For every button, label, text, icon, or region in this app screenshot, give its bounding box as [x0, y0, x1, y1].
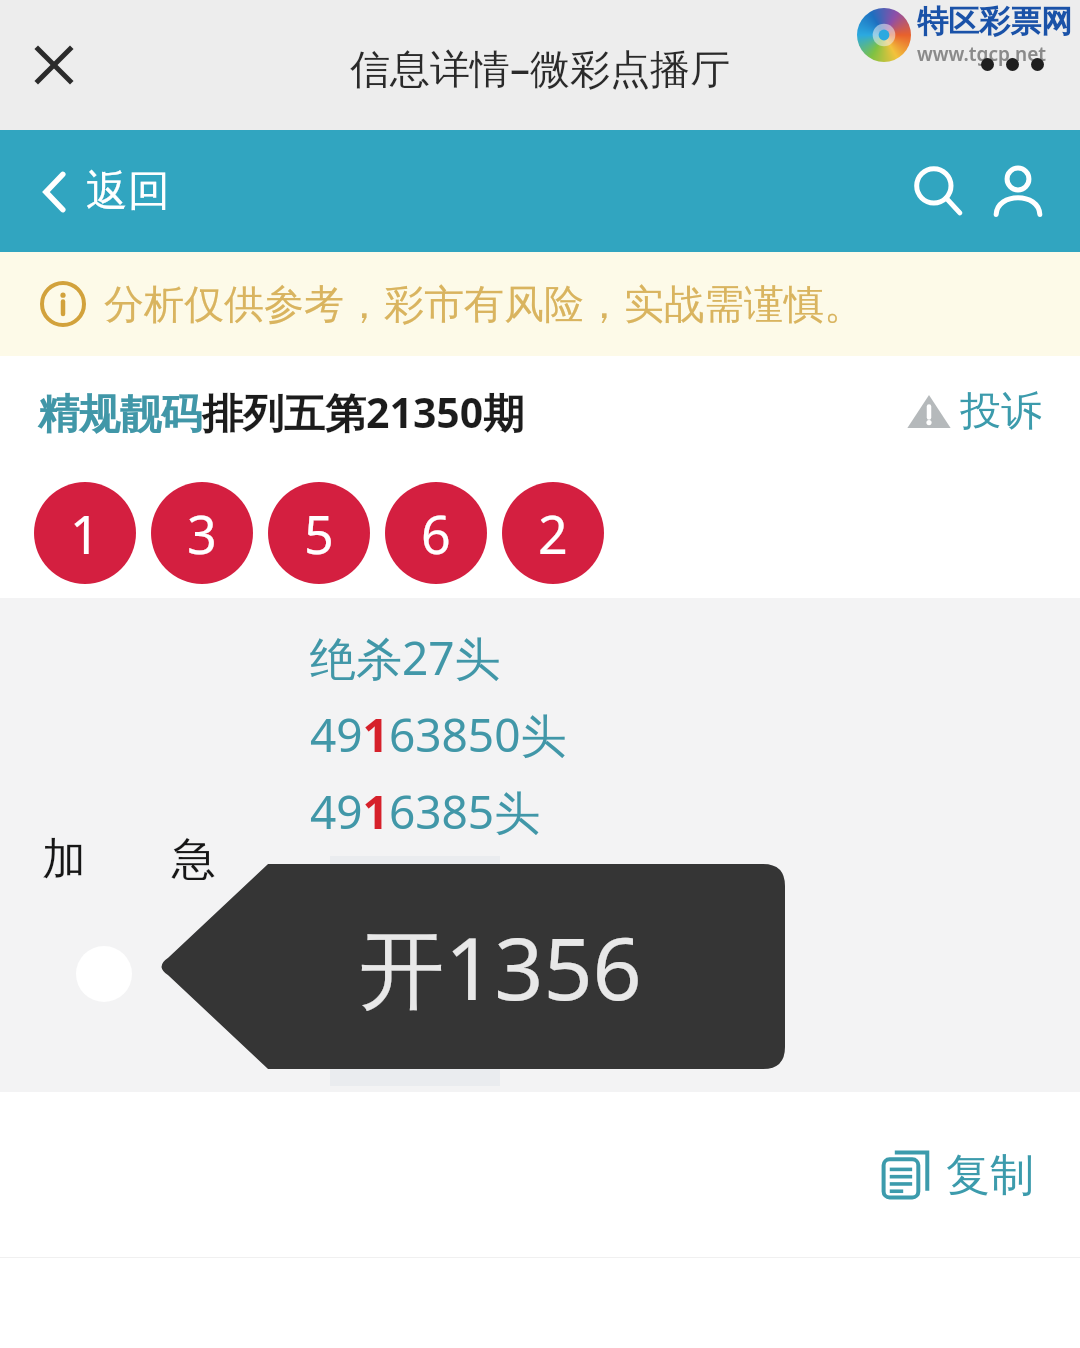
staticText: 6 [421, 498, 451, 569]
staticText: 精规靓码排列五第21350期 [38, 384, 525, 440]
staticText: 3 [187, 498, 217, 569]
staticText: 4916385头 [310, 780, 770, 843]
staticText: 开1356 [359, 908, 642, 1025]
button[interactable]: Account [978, 151, 1058, 231]
staticText: 绝杀27头 [310, 626, 770, 689]
staticText: 491638头 [310, 857, 770, 920]
staticText: 5 [304, 498, 334, 569]
staticText: 返回 [86, 165, 170, 218]
staticText: 信息详情–微彩点播厅 [350, 40, 730, 95]
staticText: www.tgcp.net [917, 41, 1047, 67]
staticText: 分析仅供参考，彩市有风险，实战需谨慎。 [104, 279, 864, 329]
staticText: 特区彩票网 [917, 2, 1072, 41]
button[interactable]: 返回 [34, 157, 178, 226]
button[interactable]: 复制 [870, 1139, 1042, 1211]
staticText: 加 [42, 832, 86, 887]
staticText: 复制 [946, 1148, 1034, 1203]
button[interactable]: 投诉 [902, 382, 1046, 442]
button[interactable]: 开1356 [155, 864, 785, 1069]
staticText: 投诉 [960, 386, 1042, 438]
staticText: 1 [70, 498, 100, 569]
button[interactable]: More options [975, 52, 1050, 77]
staticText: 49163850头 [310, 703, 770, 766]
button[interactable]: Close [22, 33, 86, 97]
staticText: 2 [538, 498, 568, 569]
button[interactable]: Search [898, 151, 978, 231]
staticText: 急 [172, 832, 216, 887]
